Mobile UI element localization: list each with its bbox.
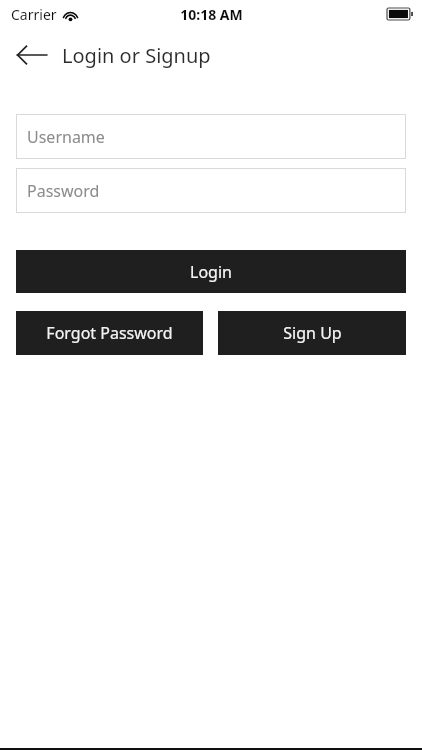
button[interactable]: Sign Up xyxy=(218,311,406,355)
button[interactable]: Back xyxy=(10,33,54,77)
button[interactable]: Login xyxy=(16,250,406,293)
staticText: Carrier xyxy=(11,5,57,24)
staticText: Password xyxy=(27,180,100,202)
button[interactable]: Username xyxy=(16,114,406,159)
staticText: Login xyxy=(190,261,232,283)
staticText: Login or Signup xyxy=(62,42,211,69)
button[interactable]: Password xyxy=(16,168,406,213)
button[interactable]: Forgot Password xyxy=(16,311,203,355)
staticText: Username xyxy=(27,126,105,148)
staticText: Forgot Password xyxy=(46,322,173,344)
staticText: 10:18 AM xyxy=(180,5,243,24)
staticText: Sign Up xyxy=(283,322,342,344)
